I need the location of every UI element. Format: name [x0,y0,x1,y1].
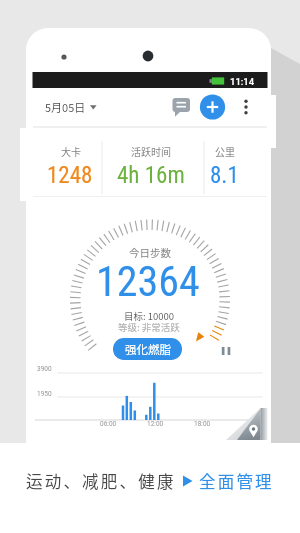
staticText: 今日步数 [129,245,171,260]
staticText: 全面管理 [199,469,274,493]
staticText: 公里 [215,144,235,158]
staticText: 12364 [96,257,200,306]
staticText: 06:00 [100,420,117,428]
staticText: 18:00 [194,420,211,428]
staticText: 目标: 10000 [124,309,175,323]
staticText: 大卡 [61,144,81,158]
staticText: 1950 [37,390,52,398]
staticText: 8.1 [210,162,239,189]
staticText: 强化燃脂 [125,341,171,358]
staticText: 活跃时间 [131,144,171,158]
staticText: 运动、减肥、健康 [26,469,176,493]
staticText: 等级: 非常活跃 [118,320,180,334]
staticText: 1248 [47,162,93,189]
staticText: 11:14 [230,76,255,87]
staticText: 3900 [37,365,52,373]
staticText: 5月05日 [45,99,86,115]
staticText: 12:00 [147,420,164,428]
staticText: 4h 16m [117,162,185,189]
